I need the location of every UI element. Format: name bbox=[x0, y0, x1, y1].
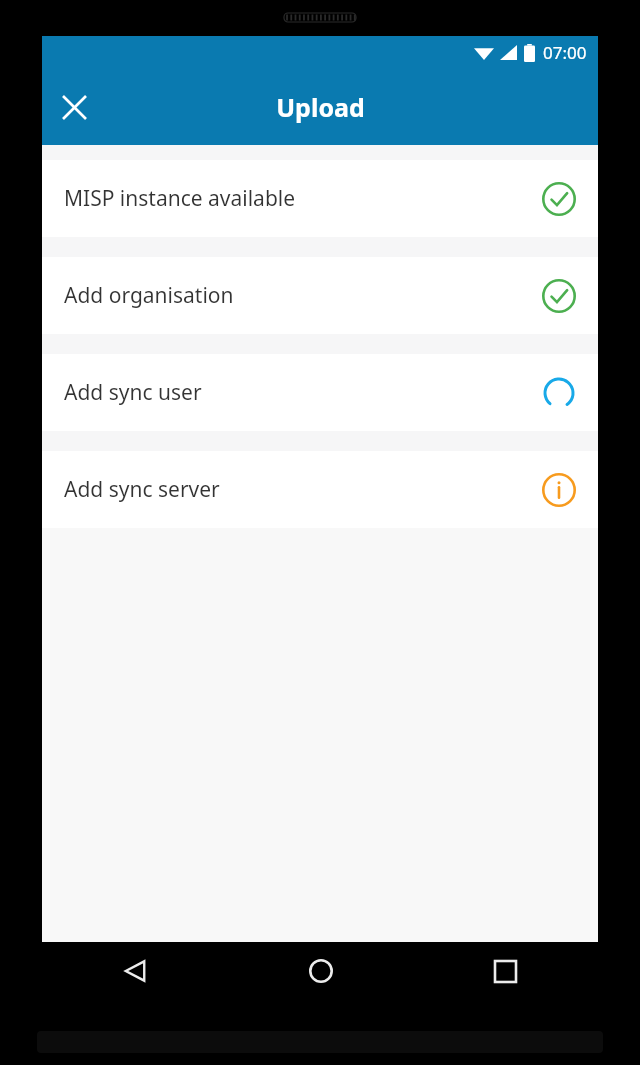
button[interactable]: Close bbox=[48, 81, 100, 133]
staticText: Upload bbox=[276, 90, 365, 124]
staticText: MISP instance available bbox=[64, 184, 542, 213]
button[interactable]: MISP instance available bbox=[42, 160, 598, 237]
button[interactable]: Add organisation bbox=[42, 257, 598, 334]
staticText: Add sync server bbox=[64, 475, 542, 504]
button[interactable]: Home bbox=[228, 942, 413, 1000]
button[interactable]: Add sync server bbox=[42, 451, 598, 528]
button[interactable]: Recent apps bbox=[413, 942, 598, 1000]
staticText: Add organisation bbox=[64, 281, 542, 310]
staticText: 07:00 bbox=[543, 41, 587, 64]
staticText: Add sync user bbox=[64, 378, 542, 407]
button[interactable]: Add sync user bbox=[42, 354, 598, 431]
button[interactable]: Back bbox=[42, 942, 228, 1000]
